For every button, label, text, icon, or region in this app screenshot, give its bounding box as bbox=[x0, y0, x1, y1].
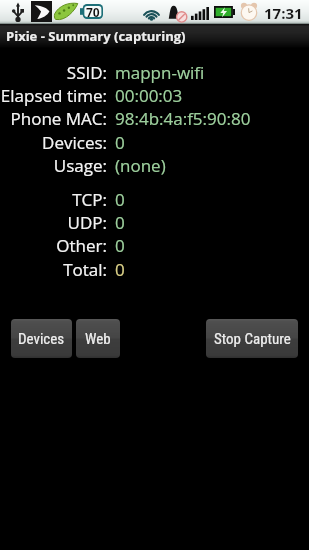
staticText: 17:31 bbox=[264, 3, 303, 23]
other: Signal strength bbox=[191, 7, 209, 20]
other: Pea pod bbox=[54, 2, 78, 21]
staticText: (none) bbox=[115, 154, 166, 177]
staticText: Devices: bbox=[42, 131, 107, 154]
staticText: UDP: bbox=[67, 211, 107, 234]
other: Battery 70 percent bbox=[80, 4, 103, 19]
staticText: Other: bbox=[56, 234, 107, 257]
staticText: Phone MAC: bbox=[10, 107, 107, 130]
staticText: Stop Capture bbox=[214, 330, 291, 348]
staticText: 00:00:03 bbox=[115, 84, 183, 107]
staticText: Elapsed time: bbox=[0, 84, 107, 107]
staticText: 0 bbox=[115, 234, 125, 257]
button[interactable]: Stop Capture bbox=[206, 319, 298, 358]
staticText: Devices bbox=[18, 330, 65, 348]
staticText: 0 bbox=[115, 258, 125, 281]
other: Battery charging bbox=[214, 6, 235, 18]
button[interactable]: Devices bbox=[11, 319, 72, 358]
other: Silent mode bbox=[168, 4, 187, 22]
staticText: 0 bbox=[115, 131, 125, 154]
other: USB connected bbox=[12, 2, 24, 22]
other: Wi-Fi connected bbox=[142, 4, 161, 21]
staticText: SSID: bbox=[66, 61, 107, 84]
staticText: 0 bbox=[115, 188, 125, 211]
staticText: Web bbox=[85, 330, 111, 348]
staticText: Usage: bbox=[53, 154, 107, 177]
other: App notification bbox=[31, 1, 52, 22]
staticText: TCP: bbox=[72, 188, 107, 211]
other: Alarm set bbox=[240, 2, 258, 21]
staticText: 0 bbox=[115, 211, 125, 234]
staticText: 70 bbox=[86, 4, 100, 19]
staticText: Total: bbox=[63, 258, 107, 281]
button[interactable]: Web bbox=[76, 319, 120, 358]
staticText: mappn-wifi bbox=[115, 61, 205, 84]
staticText: Pixie - Summary (capturing) bbox=[6, 27, 186, 45]
staticText: 98:4b:4a:f5:90:80 bbox=[115, 107, 251, 130]
